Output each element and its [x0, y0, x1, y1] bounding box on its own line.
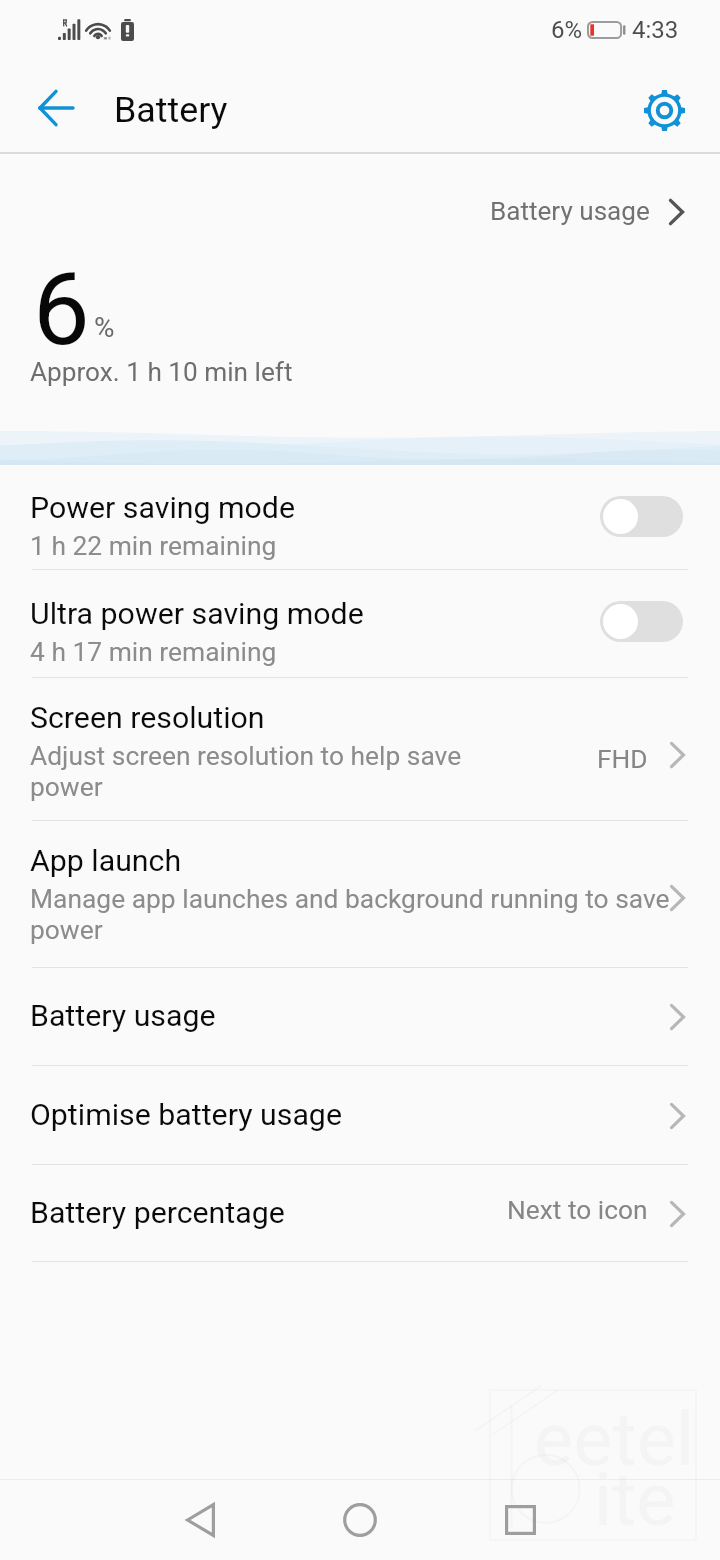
- button[interactable]: Recents: [480, 1479, 560, 1560]
- button[interactable]: Ultra power saving mode: [0, 570, 720, 678]
- button[interactable]: App launch: [0, 821, 720, 968]
- button[interactable]: Battery usage: [490, 196, 693, 227]
- staticText: Manage app launches and background runni…: [30, 884, 670, 915]
- button[interactable]: Battery usage: [0, 968, 720, 1066]
- staticText: FHD: [597, 744, 648, 775]
- button[interactable]: Settings: [627, 73, 701, 147]
- staticText: power: [30, 915, 103, 946]
- button[interactable]: Optimise battery usage: [0, 1066, 720, 1165]
- staticText: 1 h 22 min remaining: [30, 531, 277, 562]
- staticText: Battery percentage: [30, 1195, 285, 1231]
- staticText: Optimise battery usage: [30, 1097, 342, 1133]
- staticText: %: [94, 311, 115, 344]
- staticText: 4:33: [632, 16, 679, 44]
- button[interactable]: Back: [160, 1479, 240, 1560]
- staticText: 4 h 17 min remaining: [30, 637, 277, 668]
- staticText: Battery usage: [30, 998, 216, 1034]
- staticText: Battery: [114, 89, 228, 131]
- button[interactable]: Screen resolution: [0, 678, 720, 821]
- staticText: Ultra power saving mode: [30, 596, 364, 632]
- staticText: Battery usage: [490, 196, 650, 227]
- button[interactable]: Back: [18, 70, 94, 146]
- staticText: power: [30, 772, 103, 803]
- button[interactable]: Power saving mode: [0, 465, 720, 570]
- button[interactable]: Home: [320, 1479, 400, 1560]
- staticText: 6%: [551, 16, 583, 44]
- staticText: App launch: [30, 843, 182, 879]
- button[interactable]: Battery percentage: [0, 1165, 720, 1262]
- staticText: Approx. 1 h 10 min left: [30, 357, 293, 388]
- staticText: Power saving mode: [30, 490, 296, 526]
- staticText: Screen resolution: [30, 700, 265, 736]
- staticText: Adjust screen resolution to help save: [30, 741, 462, 772]
- staticText: Next to icon: [507, 1195, 648, 1226]
- staticText: 6: [33, 250, 90, 368]
- button[interactable]: Power saving mode toggle: [600, 496, 683, 537]
- button[interactable]: Ultra power saving mode toggle: [600, 601, 683, 642]
